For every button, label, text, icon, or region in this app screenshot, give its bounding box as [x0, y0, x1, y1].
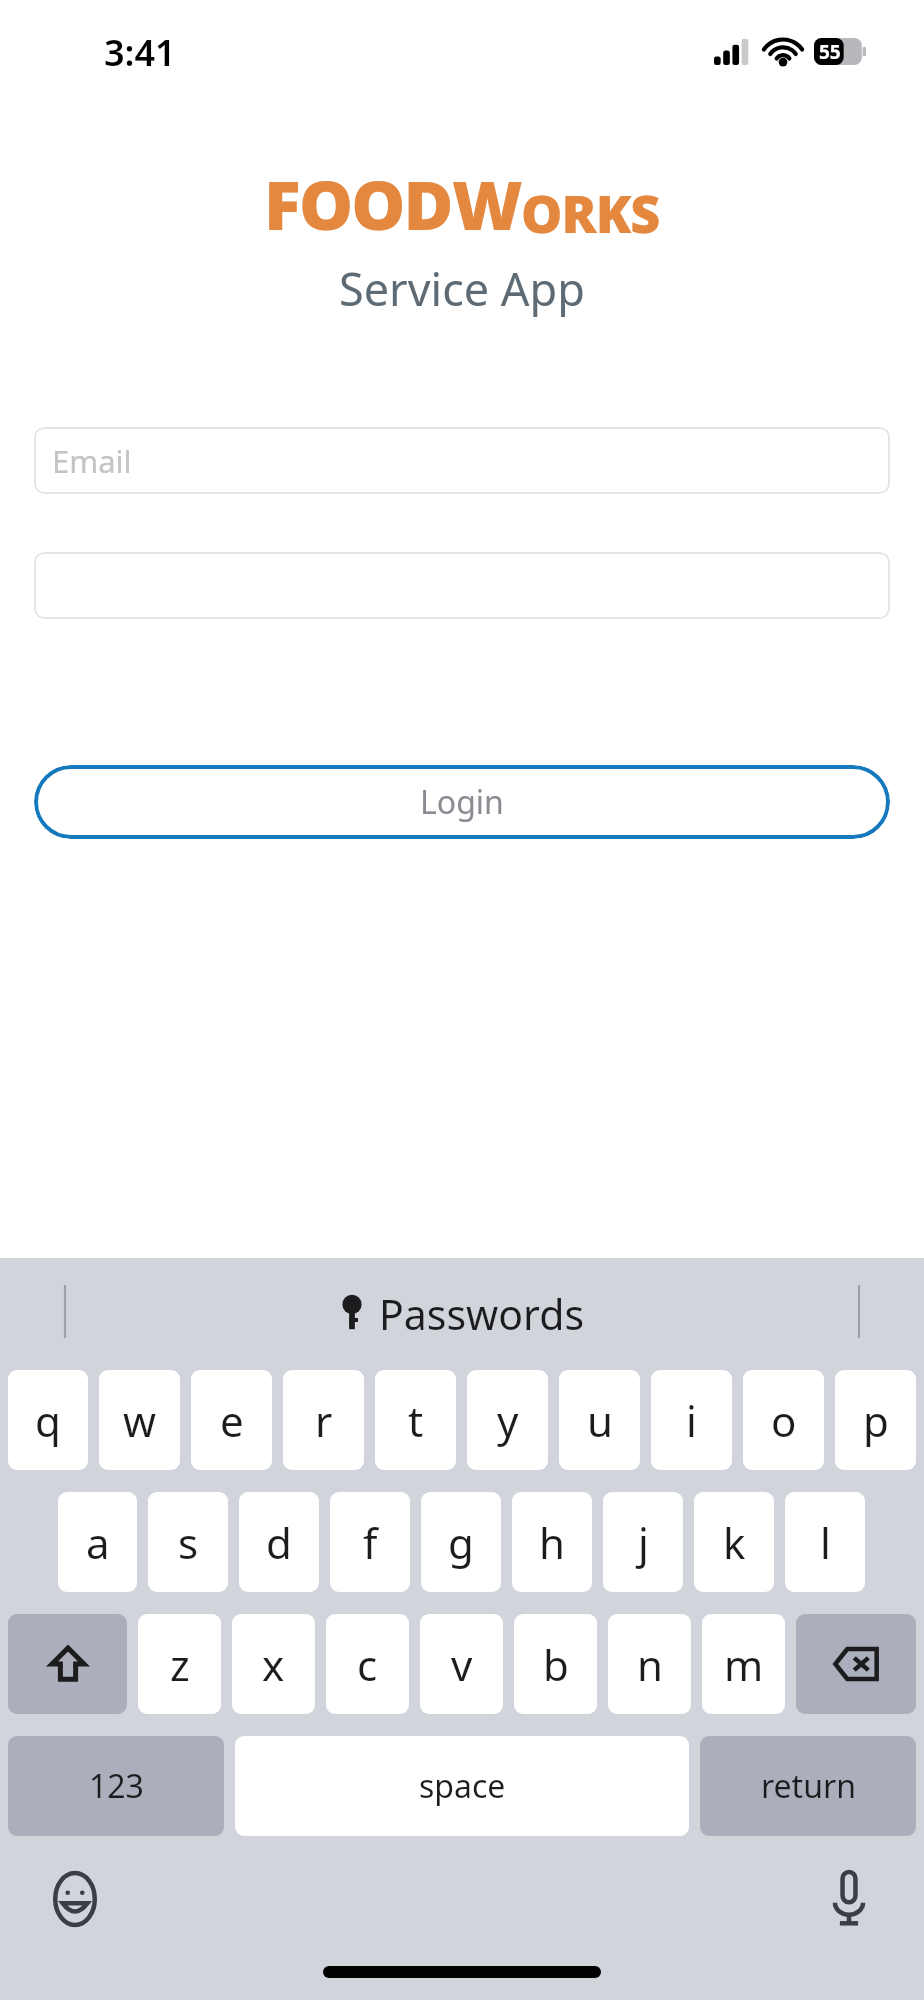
- staticText: m: [724, 1636, 764, 1693]
- button[interactable]: q: [8, 1370, 88, 1470]
- button[interactable]: r: [283, 1370, 364, 1470]
- staticText: Email: [52, 440, 132, 482]
- staticText: d: [266, 1514, 292, 1571]
- staticText: z: [170, 1636, 190, 1693]
- button[interactable]: g: [421, 1492, 501, 1592]
- button[interactable]: a: [58, 1492, 137, 1592]
- staticText: 123: [89, 1764, 144, 1808]
- button[interactable]: z: [138, 1614, 221, 1714]
- staticText: return: [761, 1764, 856, 1808]
- staticText: e: [220, 1392, 244, 1449]
- button[interactable]: l: [785, 1492, 865, 1592]
- staticText: k: [723, 1514, 746, 1571]
- staticText: o: [771, 1392, 797, 1449]
- staticText: g: [448, 1514, 474, 1571]
- staticText: u: [587, 1392, 613, 1449]
- button[interactable]: j: [603, 1492, 683, 1592]
- button[interactable]: Emoji: [46, 1870, 104, 1928]
- button[interactable]: p: [835, 1370, 916, 1470]
- button[interactable]: u: [559, 1370, 640, 1470]
- staticText: l: [820, 1514, 831, 1571]
- button[interactable]: k: [694, 1492, 774, 1592]
- button[interactable]: w: [99, 1370, 180, 1470]
- button[interactable]: m: [702, 1614, 785, 1714]
- button[interactable]: t: [375, 1370, 456, 1470]
- button[interactable]: Passwords: [339, 1286, 585, 1342]
- staticText: j: [638, 1514, 649, 1571]
- staticText: space: [419, 1764, 506, 1808]
- button[interactable]: [34, 552, 890, 619]
- button[interactable]: 123: [8, 1736, 224, 1836]
- staticText: i: [686, 1392, 697, 1449]
- staticText: f: [363, 1514, 378, 1571]
- button[interactable]: s: [148, 1492, 228, 1592]
- button[interactable]: return: [700, 1736, 916, 1836]
- staticText: OOD: [299, 157, 452, 250]
- button[interactable]: space: [235, 1736, 689, 1836]
- staticText: 55: [819, 39, 841, 65]
- staticText: s: [178, 1514, 199, 1571]
- staticText: ORKS: [521, 177, 660, 248]
- staticText: c: [357, 1636, 378, 1693]
- staticText: q: [35, 1392, 61, 1449]
- staticText: Service App: [339, 258, 585, 319]
- staticText: v: [451, 1636, 473, 1693]
- staticText: x: [262, 1636, 285, 1693]
- staticText: 3:41: [104, 28, 176, 77]
- staticText: b: [543, 1636, 569, 1693]
- button[interactable]: x: [232, 1614, 315, 1714]
- button[interactable]: Dictation: [820, 1870, 878, 1928]
- staticText: w: [123, 1392, 157, 1449]
- staticText: Passwords: [379, 1286, 585, 1342]
- staticText: p: [863, 1392, 889, 1449]
- staticText: y: [497, 1392, 519, 1449]
- staticText: h: [539, 1514, 565, 1571]
- staticText: W: [452, 157, 521, 250]
- button[interactable]: v: [420, 1614, 503, 1714]
- staticText: n: [637, 1636, 663, 1693]
- button[interactable]: i: [651, 1370, 732, 1470]
- button[interactable]: Shift: [8, 1614, 127, 1714]
- staticText: Login: [420, 780, 504, 824]
- button[interactable]: f: [330, 1492, 410, 1592]
- button[interactable]: Login: [34, 765, 890, 839]
- button[interactable]: n: [608, 1614, 691, 1714]
- button[interactable]: c: [326, 1614, 409, 1714]
- staticText: F: [264, 157, 299, 250]
- button[interactable]: y: [467, 1370, 548, 1470]
- button[interactable]: h: [512, 1492, 592, 1592]
- staticText: t: [408, 1392, 424, 1449]
- button[interactable]: Email: [34, 427, 890, 494]
- button[interactable]: Backspace: [796, 1614, 916, 1714]
- staticText: a: [86, 1514, 110, 1571]
- button[interactable]: b: [514, 1614, 597, 1714]
- button[interactable]: d: [239, 1492, 319, 1592]
- staticText: r: [315, 1392, 333, 1449]
- button[interactable]: o: [743, 1370, 824, 1470]
- button[interactable]: e: [191, 1370, 272, 1470]
